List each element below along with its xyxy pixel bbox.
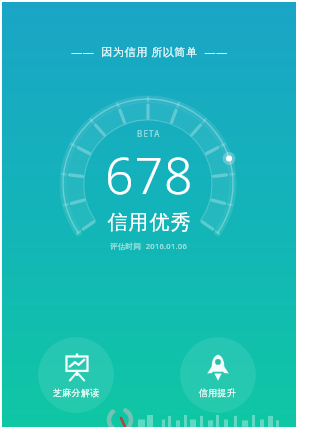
staticText: 芝麻分解读 [53, 387, 100, 398]
staticText: 信用提升 [199, 387, 237, 398]
staticText: BETA [137, 128, 161, 139]
staticText: 678 [105, 141, 194, 209]
staticText: —— 因为信用 所以简单 —— [71, 44, 228, 59]
staticText: 信用优秀 [107, 210, 191, 235]
staticText: 评估时间 2016.01.06 [110, 241, 188, 251]
button[interactable]: 芝麻分解读 [38, 337, 114, 413]
button[interactable]: 信用提升 [180, 337, 256, 413]
